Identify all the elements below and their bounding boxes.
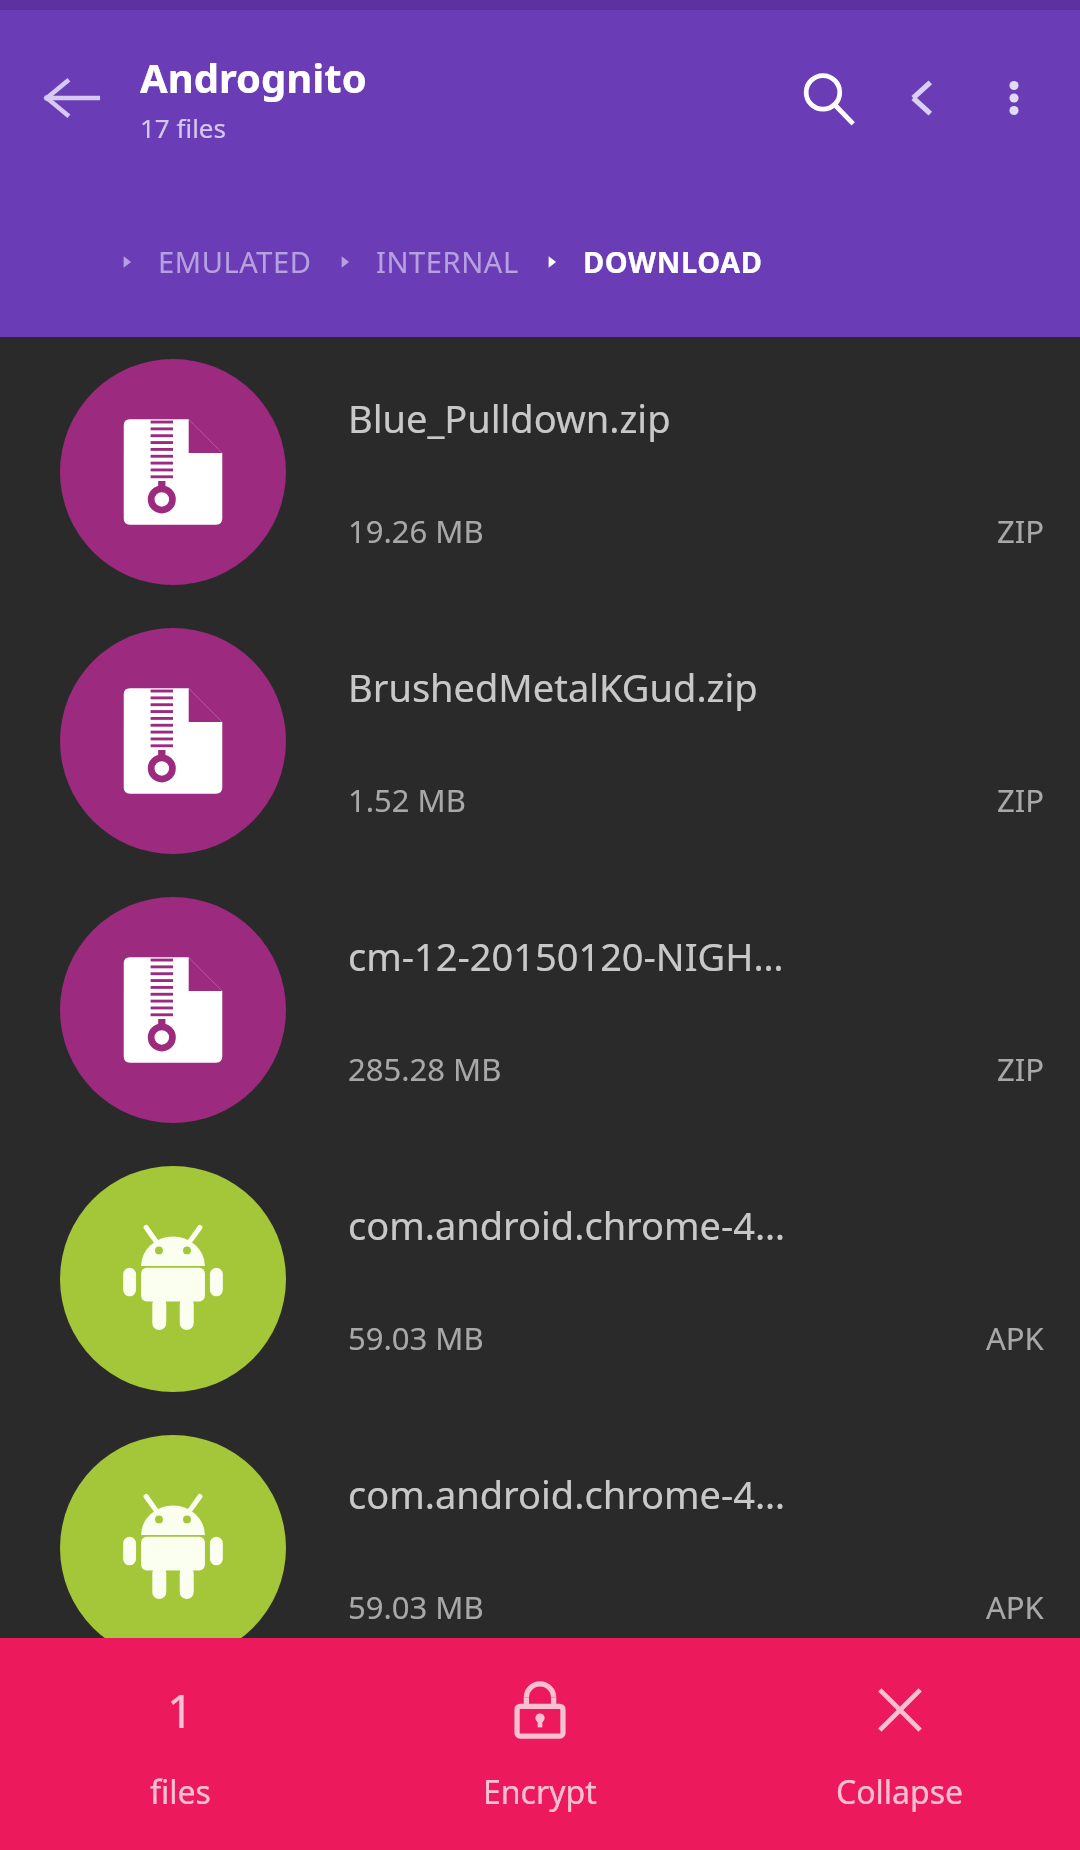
staticText: 59.03 MB: [348, 1317, 484, 1359]
staticText: 17 files: [140, 110, 226, 145]
staticText: 1: [167, 1679, 194, 1742]
button[interactable]: Search: [780, 50, 876, 146]
staticText: 285.28 MB: [348, 1048, 502, 1090]
staticText: Andrognito: [140, 50, 367, 104]
button[interactable]: Encrypt: [360, 1638, 720, 1850]
button[interactable]: DOWNLOAD: [535, 242, 779, 281]
staticText: com.android.chrome-4…: [348, 1199, 786, 1251]
staticText: 1.52 MB: [348, 779, 466, 821]
staticText: com.android.chrome-4…: [348, 1468, 786, 1520]
staticText: DOWNLOAD: [583, 242, 763, 281]
button[interactable]: Blue_Pulldown.zip: [0, 337, 1080, 606]
button[interactable]: Navigate up: [876, 52, 968, 144]
staticText: ZIP: [997, 779, 1044, 821]
staticText: cm-12-20150120-NIGH…: [348, 930, 784, 982]
staticText: INTERNAL: [376, 242, 519, 281]
button[interactable]: 1: [0, 1638, 360, 1850]
staticText: Encrypt: [483, 1770, 597, 1814]
button[interactable]: BrushedMetalKGud.zip: [0, 606, 1080, 875]
button[interactable]: Collapse: [720, 1638, 1080, 1850]
staticText: 19.26 MB: [348, 510, 484, 552]
button[interactable]: cm-12-20150120-NIGH…: [0, 875, 1080, 1144]
staticText: ZIP: [997, 1048, 1044, 1090]
staticText: BrushedMetalKGud.zip: [348, 661, 758, 713]
staticText: ZIP: [997, 510, 1044, 552]
button[interactable]: Back: [26, 52, 118, 144]
staticText: 59.03 MB: [348, 1586, 484, 1628]
button[interactable]: EMULATED: [110, 242, 328, 281]
button[interactable]: com.android.chrome-4…: [0, 1144, 1080, 1413]
button[interactable]: com.android.chrome-4…: [0, 1413, 1080, 1682]
staticText: files: [150, 1770, 211, 1814]
staticText: Blue_Pulldown.zip: [348, 392, 671, 444]
staticText: Collapse: [836, 1770, 964, 1814]
staticText: APK: [986, 1317, 1044, 1359]
button[interactable]: More options: [968, 52, 1060, 144]
staticText: APK: [986, 1586, 1044, 1628]
button[interactable]: INTERNAL: [328, 242, 535, 281]
staticText: EMULATED: [158, 242, 312, 281]
